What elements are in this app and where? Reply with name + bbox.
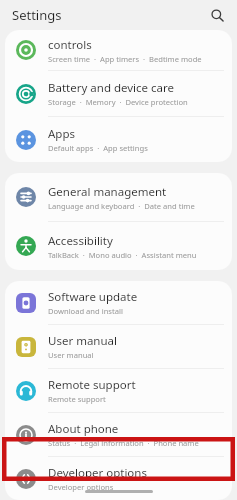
staticText: Remote support [48,377,136,393]
staticText: Apps [48,126,76,142]
staticText: Default apps · App settings [48,143,148,153]
staticText: Developer options [48,465,147,481]
staticText: Battery and device care [48,80,175,96]
staticText: General management [48,184,167,200]
staticText: Language and keyboard · Date and time [48,201,195,211]
staticText: Status · Legal information · Phone name [48,438,199,448]
staticText: Accessibility [48,233,113,249]
button[interactable]: User manual [5,325,232,368]
button[interactable]: General management [5,173,232,221]
staticText: About phone [48,421,119,437]
button[interactable]: Search [206,4,228,26]
button[interactable]: Accessibility [5,222,232,270]
staticText: User manual [48,333,117,349]
staticText: Remote support [48,394,106,404]
button[interactable]: About phone [5,413,232,456]
button[interactable]: Apps [5,117,232,162]
button[interactable]: controls [5,30,232,70]
staticText: Developer options [48,482,114,492]
staticText: User manual [48,350,94,360]
staticText: Download and install [48,306,123,316]
button[interactable]: Battery and device care [5,71,232,116]
staticText: Software update [48,289,138,305]
button[interactable]: Software update [5,281,232,324]
button[interactable]: Developer options [5,457,232,500]
staticText: Settings [12,6,62,24]
button[interactable]: Remote support [5,369,232,412]
staticText: Storage · Memory · Device protection [48,97,188,107]
staticText: controls [48,37,92,53]
staticText: Screen time · App timers · Bedtime mode [48,54,202,64]
staticText: TalkBack · Mono audio · Assistant menu [48,250,197,260]
